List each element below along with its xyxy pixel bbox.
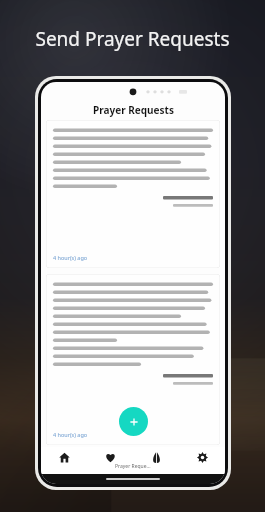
staticText: 4 hour(s) ago	[53, 254, 88, 261]
staticText: Send Prayer Requests	[0, 26, 265, 52]
button[interactable]: New prayer request	[119, 407, 148, 436]
button[interactable]: 4 hour(s) ago	[46, 274, 220, 445]
button[interactable]: 4 hour(s) ago	[46, 120, 220, 268]
staticText: 4 hour(s) ago	[53, 431, 88, 438]
staticText: Prayer Requests	[93, 103, 174, 117]
button[interactable]: Settings	[179, 447, 225, 474]
button[interactable]: Favorites	[87, 447, 133, 474]
staticText: Prayer Reque...	[115, 463, 151, 470]
button[interactable]: Prayer Requests	[133, 447, 179, 474]
button[interactable]: Home	[41, 447, 87, 474]
